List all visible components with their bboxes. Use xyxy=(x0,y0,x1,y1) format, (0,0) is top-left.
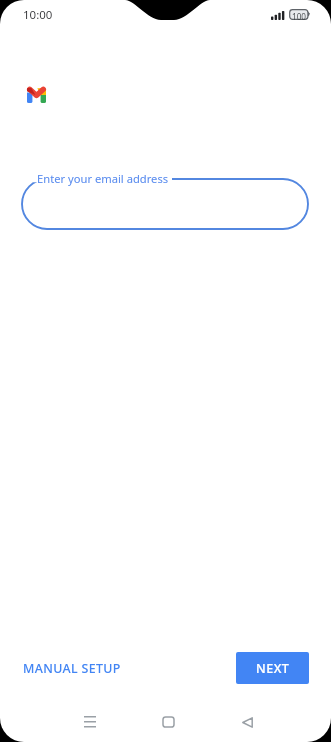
button[interactable]: Recent apps xyxy=(61,700,118,742)
staticText: MANUAL SETUP xyxy=(23,660,121,677)
staticText: Enter your email address xyxy=(37,171,169,186)
button[interactable]: NEXT xyxy=(236,652,309,684)
staticText: 100 xyxy=(292,11,307,22)
staticText: NEXT xyxy=(256,660,290,677)
button[interactable]: Back xyxy=(219,700,276,742)
button[interactable]: MANUAL SETUP xyxy=(9,651,135,686)
button[interactable]: Home xyxy=(140,700,197,742)
staticText: 10:00 xyxy=(23,7,53,23)
